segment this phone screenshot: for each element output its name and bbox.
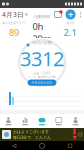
button[interactable]: 4月3日 bbox=[0, 8, 30, 21]
staticText: 目標歩数を設定 bbox=[31, 81, 52, 84]
button[interactable]: Back bbox=[0, 141, 28, 150]
staticText: レベル 健康的な歩数 bbox=[28, 75, 56, 78]
button[interactable]: Friends bbox=[67, 114, 84, 128]
staticText: 毎日3分で、ぐんぐん bbox=[13, 135, 51, 140]
staticText: ▾ bbox=[25, 11, 28, 18]
button[interactable]: Messages bbox=[52, 8, 64, 21]
staticText: + bbox=[68, 8, 73, 21]
button[interactable]: Statistics bbox=[17, 114, 34, 128]
button[interactable]: Profile bbox=[0, 114, 17, 128]
staticText: 0h 29m bbox=[32, 20, 51, 45]
button[interactable]: Recents bbox=[56, 141, 84, 150]
staticText: 今日の歩数 bbox=[32, 40, 52, 45]
button[interactable]: Add bbox=[64, 8, 77, 21]
staticText: 活動時間 bbox=[34, 14, 50, 19]
staticText: 2.1 bbox=[63, 26, 76, 39]
button[interactable]: 目標歩数を設定 bbox=[27, 79, 56, 86]
staticText: 目標 11000 bbox=[33, 72, 50, 75]
button[interactable]: Home bbox=[28, 141, 56, 150]
staticText: キロカロリー bbox=[2, 20, 26, 25]
button[interactable]: More options bbox=[77, 8, 84, 21]
staticText: ◁ bbox=[12, 142, 16, 149]
staticText: 4月3日 bbox=[2, 10, 24, 19]
staticText: ▢ bbox=[67, 142, 72, 149]
staticText: おはようございます bbox=[13, 129, 49, 134]
button[interactable]: Activity bbox=[34, 114, 50, 128]
staticText: 3312 bbox=[20, 45, 64, 72]
staticText: キロ bbox=[66, 20, 74, 25]
staticText: 89 bbox=[9, 26, 19, 39]
button[interactable]: Challenges bbox=[50, 114, 67, 128]
staticText: ◯ bbox=[39, 142, 45, 149]
staticText: ▼ bbox=[72, 134, 76, 141]
button[interactable]: Advertisement bbox=[0, 128, 84, 141]
